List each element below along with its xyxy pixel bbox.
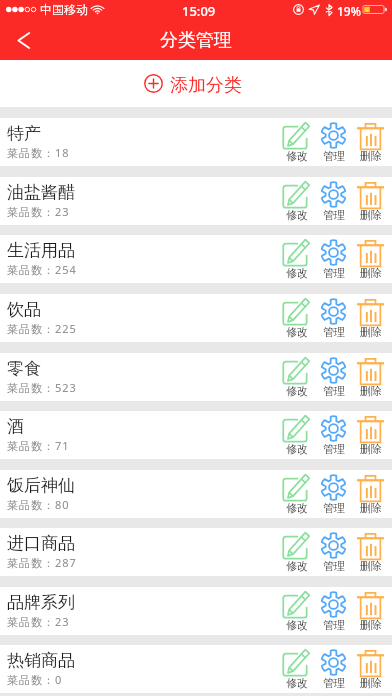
staticText: 15:09 xyxy=(182,2,216,20)
staticText: 菜品数：80 xyxy=(7,497,70,512)
button[interactable]: 管理 xyxy=(315,470,352,518)
staticText: 零食 xyxy=(7,358,41,379)
button[interactable]: 管理 xyxy=(315,177,352,225)
staticText: 管理 xyxy=(323,325,345,339)
staticText: 管理 xyxy=(323,618,345,632)
staticText: 特产 xyxy=(7,123,41,144)
staticText: 菜品数：523 xyxy=(7,380,77,395)
staticText: 修改 xyxy=(286,559,308,573)
staticText: 管理 xyxy=(323,501,345,515)
staticText: 菜品数：23 xyxy=(7,614,70,629)
button[interactable]: 修改 xyxy=(278,118,315,166)
button[interactable]: 修改 xyxy=(278,470,315,518)
staticText: 删除 xyxy=(360,618,382,632)
staticText: 管理 xyxy=(323,384,345,398)
staticText: 品牌系列 xyxy=(7,592,75,613)
staticText: 热销商品 xyxy=(7,650,75,671)
button[interactable]: 管理 xyxy=(315,118,352,166)
staticText: 删除 xyxy=(360,325,382,339)
staticText: 修改 xyxy=(286,618,308,632)
button[interactable]: 添加分类 xyxy=(136,60,250,107)
staticText: 菜品数：287 xyxy=(7,555,77,570)
button[interactable]: 修改 xyxy=(278,353,315,401)
button[interactable]: 修改 xyxy=(278,528,315,576)
button[interactable]: 管理 xyxy=(315,528,352,576)
button[interactable]: 管理 xyxy=(315,587,352,635)
staticText: 删除 xyxy=(360,442,382,456)
staticText: 修改 xyxy=(286,208,308,222)
button[interactable]: 删除 xyxy=(352,294,389,342)
staticText: 管理 xyxy=(323,208,345,222)
button[interactable]: 返回 xyxy=(0,20,46,60)
button[interactable]: 删除 xyxy=(352,118,389,166)
staticText: 删除 xyxy=(360,149,382,163)
staticText: 菜品数：254 xyxy=(7,262,77,277)
staticText: 生活用品 xyxy=(7,240,75,261)
staticText: 19% xyxy=(337,3,361,19)
staticText: 修改 xyxy=(286,384,308,398)
staticText: 管理 xyxy=(323,442,345,456)
staticText: 饭后神仙 xyxy=(7,475,75,496)
button[interactable]: 管理 xyxy=(315,353,352,401)
button[interactable]: 管理 xyxy=(315,411,352,459)
staticText: 菜品数：23 xyxy=(7,204,70,219)
button[interactable]: 删除 xyxy=(352,470,389,518)
staticText: 分类管理 xyxy=(160,29,232,52)
staticText: 修改 xyxy=(286,149,308,163)
button[interactable]: 修改 xyxy=(278,587,315,635)
staticText: 酒 xyxy=(7,416,24,437)
button[interactable]: 删除 xyxy=(352,645,389,693)
staticText: 删除 xyxy=(360,501,382,515)
staticText: 删除 xyxy=(360,208,382,222)
staticText: 管理 xyxy=(323,266,345,280)
staticText: 管理 xyxy=(323,676,345,690)
button[interactable]: 修改 xyxy=(278,411,315,459)
staticText: 修改 xyxy=(286,676,308,690)
staticText: 管理 xyxy=(323,559,345,573)
staticText: 菜品数：0 xyxy=(7,672,63,687)
staticText: 菜品数：71 xyxy=(7,438,70,453)
staticText: 修改 xyxy=(286,266,308,280)
button[interactable]: 修改 xyxy=(278,645,315,693)
button[interactable]: 管理 xyxy=(315,645,352,693)
button[interactable]: 删除 xyxy=(352,528,389,576)
staticText: 修改 xyxy=(286,501,308,515)
staticText: 菜品数：225 xyxy=(7,321,77,336)
staticText: 修改 xyxy=(286,442,308,456)
staticText: 菜品数：18 xyxy=(7,145,70,160)
button[interactable]: 修改 xyxy=(278,294,315,342)
button[interactable]: 管理 xyxy=(315,235,352,283)
button[interactable]: 删除 xyxy=(352,411,389,459)
button[interactable]: 管理 xyxy=(315,294,352,342)
staticText: 删除 xyxy=(360,384,382,398)
staticText: 修改 xyxy=(286,325,308,339)
staticText: 添加分类 xyxy=(170,74,242,97)
staticText: 删除 xyxy=(360,266,382,280)
button[interactable]: 删除 xyxy=(352,353,389,401)
button[interactable]: 删除 xyxy=(352,177,389,225)
staticText: 进口商品 xyxy=(7,533,75,554)
button[interactable]: 删除 xyxy=(352,235,389,283)
button[interactable]: 修改 xyxy=(278,177,315,225)
button[interactable]: 修改 xyxy=(278,235,315,283)
staticText: 管理 xyxy=(323,149,345,163)
staticText: 删除 xyxy=(360,559,382,573)
staticText: 饮品 xyxy=(7,299,41,320)
button[interactable]: 删除 xyxy=(352,587,389,635)
staticText: 中国移动 xyxy=(40,2,88,17)
staticText: 删除 xyxy=(360,676,382,690)
staticText: 油盐酱醋 xyxy=(7,182,75,203)
